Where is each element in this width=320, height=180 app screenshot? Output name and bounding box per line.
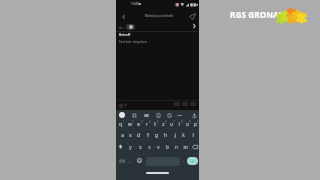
staticText: 13:06	[131, 2, 140, 6]
button[interactable]: Werkzeug	[166, 112, 172, 118]
staticText: f	[147, 132, 149, 139]
button[interactable]: l	[188, 130, 197, 141]
staticText: n	[175, 144, 178, 150]
button[interactable]: Werkzeug	[143, 112, 149, 118]
button[interactable]: h	[161, 130, 170, 141]
staticText: 9	[189, 120, 191, 124]
staticText: t	[154, 121, 156, 128]
staticText: g	[155, 132, 158, 139]
button[interactable]: e	[134, 119, 143, 130]
staticText: p	[194, 121, 197, 128]
staticText: q	[119, 121, 122, 128]
button[interactable]: o	[183, 119, 191, 130]
staticText: a	[121, 132, 124, 139]
staticText: v	[157, 144, 160, 150]
button[interactable]: Löschen	[190, 142, 199, 151]
staticText: RGS GRONAU	[230, 9, 286, 20]
button[interactable]: Mehr	[176, 112, 182, 118]
button[interactable]: t	[151, 119, 159, 130]
staticText: d	[137, 132, 140, 139]
button[interactable]: Senden	[187, 11, 198, 22]
staticText: k	[182, 132, 185, 139]
staticText: s	[129, 132, 132, 139]
staticText: ,	[129, 158, 131, 164]
button[interactable]: Senden	[187, 157, 198, 165]
button[interactable]: c	[145, 141, 154, 152]
button[interactable]: a	[118, 130, 126, 141]
staticText: c	[148, 144, 151, 150]
staticText: 6	[165, 120, 167, 124]
button[interactable]: k	[179, 130, 188, 141]
button[interactable]: Werkzeug	[155, 112, 161, 118]
button[interactable]: n	[172, 141, 181, 152]
button[interactable]: r	[143, 119, 151, 130]
staticText: Betreff	[119, 33, 131, 37]
staticText: An:	[119, 25, 125, 30]
button[interactable]: Google	[119, 112, 125, 118]
staticText: 2	[132, 120, 134, 124]
staticText: w	[128, 121, 132, 128]
staticText: o	[186, 121, 189, 128]
button[interactable]: p	[191, 119, 199, 130]
staticText: l	[192, 132, 194, 139]
button[interactable]: m	[181, 141, 190, 152]
button[interactable]: x	[135, 141, 145, 152]
button[interactable]: f	[143, 130, 152, 141]
staticText: i	[178, 121, 180, 128]
staticText: x	[139, 144, 142, 150]
staticText: 8	[181, 120, 183, 124]
button[interactable]: d	[134, 130, 143, 141]
staticText: b	[166, 144, 169, 150]
button[interactable]: z	[159, 119, 167, 130]
button[interactable]: s	[126, 130, 134, 141]
staticText: y	[129, 144, 132, 150]
staticText: 0	[197, 120, 199, 124]
staticText: z	[162, 121, 165, 128]
staticText: 5	[157, 120, 159, 124]
staticText: 1	[123, 120, 125, 124]
button[interactable]: y	[125, 141, 135, 152]
button[interactable]: Symbole	[117, 157, 126, 165]
staticText: e	[137, 121, 140, 128]
button[interactable]: j	[170, 130, 179, 141]
staticText: u	[170, 121, 173, 128]
staticText: Mitteilung an Lehrkraft	[145, 14, 174, 18]
button[interactable]: i	[175, 119, 183, 130]
button[interactable]: Mehr	[189, 21, 198, 30]
staticText: Text hier eingeben	[119, 40, 147, 44]
staticText: m	[183, 144, 188, 150]
button[interactable]: g	[152, 130, 161, 141]
button[interactable]: q	[116, 119, 125, 130]
staticText: h	[164, 132, 167, 139]
staticText: 7	[173, 120, 175, 124]
staticText: 4	[149, 120, 151, 124]
button[interactable]: u	[167, 119, 175, 130]
button[interactable]: Emoji	[136, 157, 143, 164]
staticText: .	[183, 158, 185, 164]
button[interactable]: Empfänger	[126, 24, 135, 30]
button[interactable]: w	[125, 119, 134, 130]
button[interactable]: Mikrofon	[191, 112, 197, 118]
staticText: j	[174, 132, 176, 139]
button[interactable]: b	[163, 141, 172, 152]
staticText: 3	[141, 120, 143, 124]
staticText: r	[146, 121, 148, 128]
button[interactable]: v	[154, 141, 163, 152]
button[interactable]: Umschalt	[116, 142, 125, 151]
button[interactable]: Zurück	[118, 11, 129, 22]
button[interactable]: Werkzeug	[131, 112, 137, 118]
